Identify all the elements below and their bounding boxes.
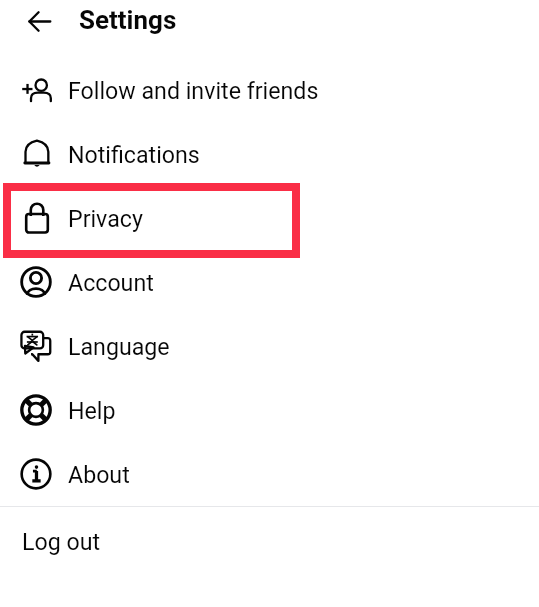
button[interactable]: Back <box>18 0 60 42</box>
button[interactable]: Privacy <box>0 186 539 250</box>
button[interactable]: Account <box>0 250 539 314</box>
staticText: Account <box>68 269 154 296</box>
staticText: Follow and invite friends <box>68 77 319 104</box>
staticText: Settings <box>79 5 177 35</box>
staticText: Language <box>68 333 170 360</box>
button[interactable]: Help <box>0 378 539 442</box>
staticText: Log out <box>22 528 101 555</box>
staticText: About <box>68 461 130 488</box>
staticText: Help <box>68 397 116 424</box>
button[interactable]: About <box>0 442 539 506</box>
staticText: Privacy <box>68 205 143 232</box>
button[interactable]: Log out <box>0 507 539 575</box>
button[interactable]: Follow and invite friends <box>0 58 539 122</box>
staticText: Notifications <box>68 141 200 168</box>
button[interactable]: Notifications <box>0 122 539 186</box>
button[interactable]: Language <box>0 314 539 378</box>
